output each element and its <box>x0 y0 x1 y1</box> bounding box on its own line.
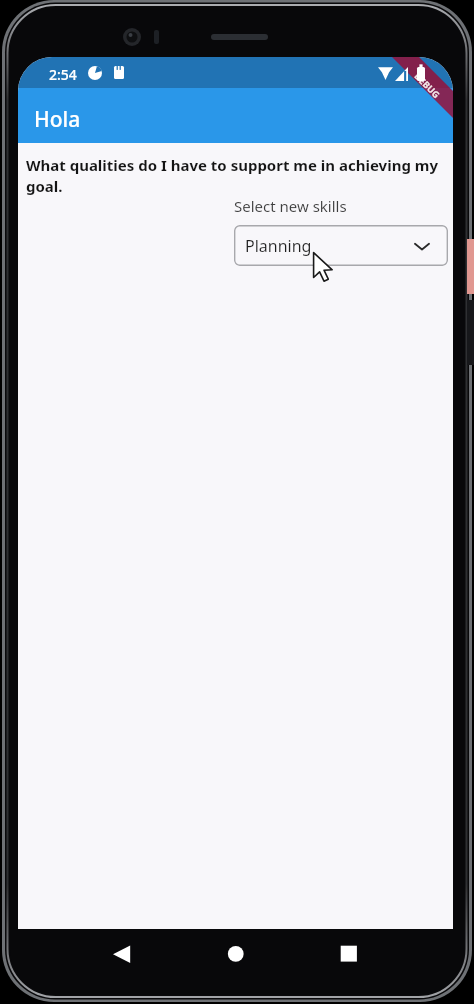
staticText: Select new skills <box>234 196 347 216</box>
staticText: DEBUG <box>412 70 443 100</box>
button[interactable]: Home <box>208 929 300 989</box>
staticText: What qualities do I have to support me i… <box>26 155 444 197</box>
staticText: Planning <box>245 235 312 257</box>
button[interactable]: Select new skills <box>234 225 448 266</box>
button[interactable]: Recent apps <box>318 929 408 989</box>
button[interactable]: Back <box>82 929 172 989</box>
staticText: 2:54 <box>49 65 77 84</box>
staticText: Hola <box>34 105 81 134</box>
